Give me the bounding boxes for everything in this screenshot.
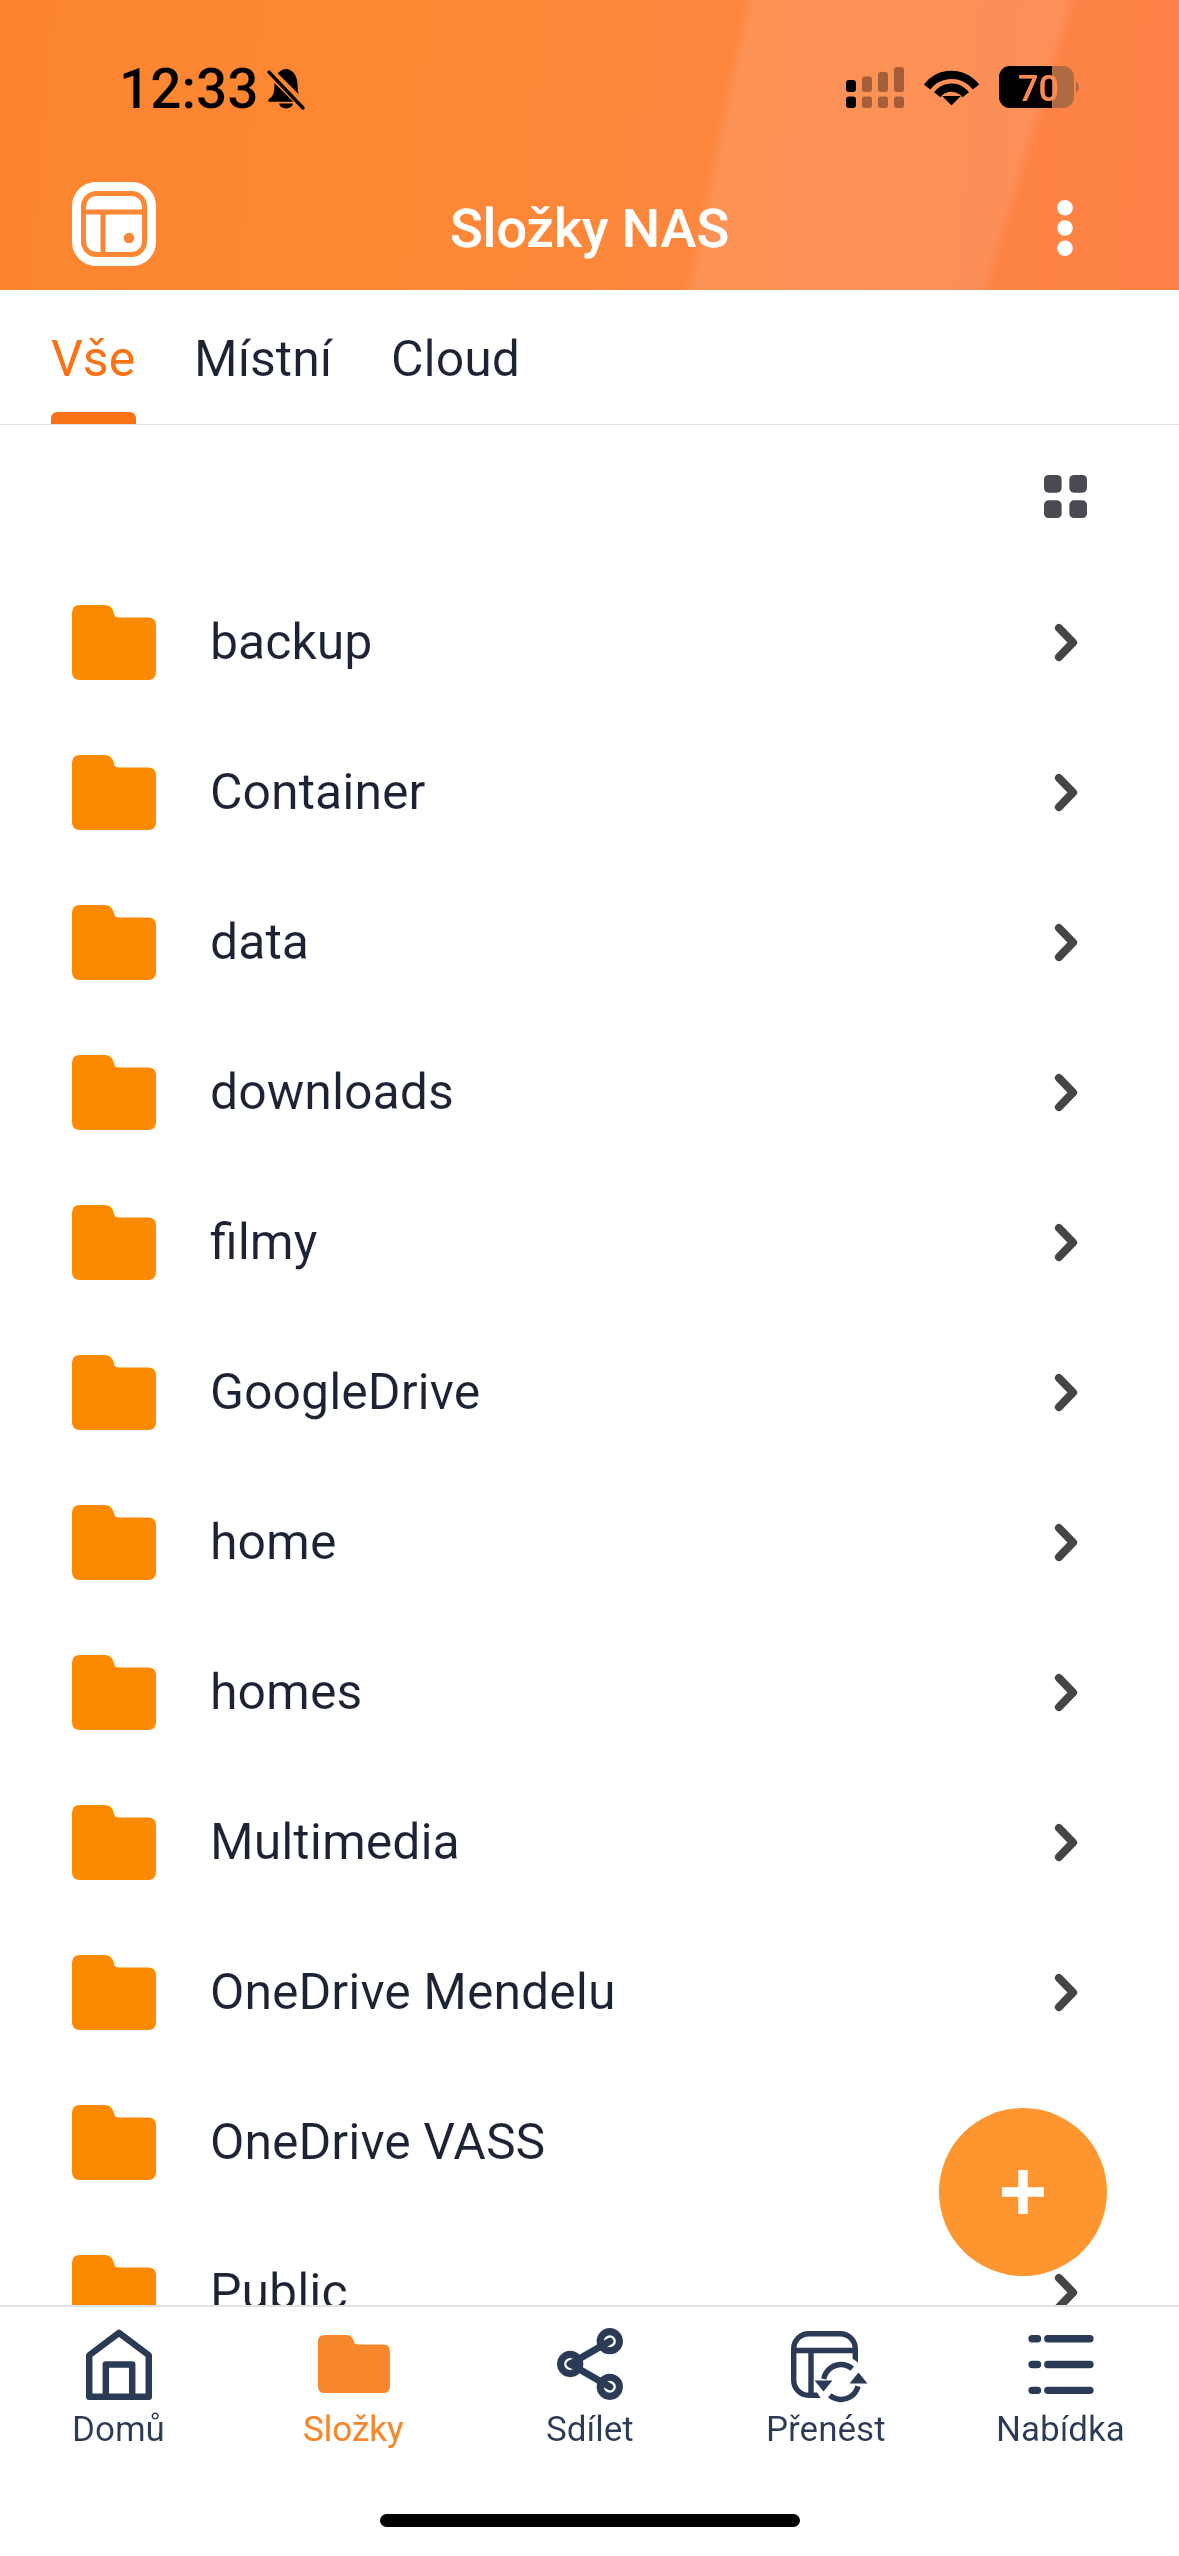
button[interactable]: Dashboard bbox=[57, 167, 171, 281]
button[interactable]: Public bbox=[0, 2217, 1179, 2305]
button[interactable]: Container bbox=[0, 717, 1179, 867]
button[interactable]: Multimedia bbox=[0, 1767, 1179, 1917]
staticText: downloads bbox=[210, 1063, 454, 1122]
button[interactable]: Sdílet bbox=[472, 2307, 707, 2467]
button[interactable]: Místní bbox=[165, 290, 362, 424]
staticText: Cloud bbox=[391, 330, 520, 389]
staticText: 70 bbox=[1018, 68, 1059, 110]
button[interactable]: filmy bbox=[0, 1167, 1179, 1317]
staticText: data bbox=[210, 913, 309, 972]
button[interactable]: data bbox=[0, 867, 1179, 1017]
staticText: homes bbox=[210, 1663, 363, 1722]
button[interactable]: Složky bbox=[236, 2307, 471, 2467]
button[interactable]: home bbox=[0, 1467, 1179, 1617]
staticText: Multimedia bbox=[210, 1813, 460, 1872]
staticText: 12:33 bbox=[119, 57, 259, 121]
button[interactable]: downloads bbox=[0, 1017, 1179, 1167]
staticText: Přenést bbox=[766, 2409, 886, 2450]
button[interactable]: Grid view bbox=[1030, 461, 1100, 531]
staticText: Container bbox=[210, 763, 426, 822]
button[interactable]: Add bbox=[939, 2108, 1107, 2276]
button[interactable]: Nabídka bbox=[943, 2307, 1178, 2467]
button[interactable]: Přenést bbox=[708, 2307, 943, 2467]
staticText: Vše bbox=[51, 330, 136, 389]
button[interactable]: More options bbox=[1025, 171, 1105, 285]
button[interactable]: GoogleDrive bbox=[0, 1317, 1179, 1467]
staticText: OneDrive Mendelu bbox=[210, 1963, 616, 2022]
staticText: home bbox=[210, 1513, 337, 1572]
staticText: OneDrive VASS bbox=[210, 2113, 546, 2172]
button[interactable]: OneDrive VASS bbox=[0, 2067, 1179, 2217]
staticText: Složky bbox=[303, 2409, 404, 2450]
staticText: Místní bbox=[194, 330, 333, 389]
staticText: Sdílet bbox=[546, 2409, 634, 2450]
staticText: GoogleDrive bbox=[210, 1363, 481, 1422]
staticText: Domů bbox=[72, 2409, 165, 2450]
staticText: backup bbox=[210, 613, 373, 672]
staticText: Složky NAS bbox=[0, 197, 1179, 260]
button[interactable]: backup bbox=[0, 567, 1179, 717]
button[interactable]: OneDrive Mendelu bbox=[0, 1917, 1179, 2067]
staticText: Public bbox=[210, 2263, 348, 2305]
button[interactable]: homes bbox=[0, 1617, 1179, 1767]
staticText: filmy bbox=[210, 1213, 318, 1272]
button[interactable]: Vše bbox=[22, 290, 165, 424]
staticText: Nabídka bbox=[996, 2409, 1125, 2450]
button[interactable]: Domů bbox=[1, 2307, 236, 2467]
button[interactable]: Cloud bbox=[362, 290, 549, 424]
